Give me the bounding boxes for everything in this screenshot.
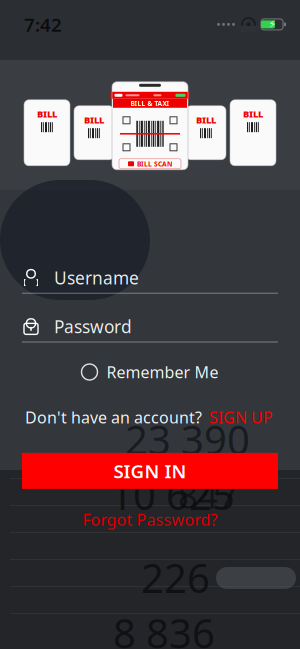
staticText: 10 <box>110 468 156 521</box>
staticText: BILL <box>196 114 216 126</box>
staticText: 390 <box>181 413 250 466</box>
staticText: BILL <box>84 114 104 126</box>
staticText: SIGN UP <box>209 407 273 428</box>
staticText: 7:42 <box>24 12 62 37</box>
button[interactable]: SIGN IN <box>22 453 278 489</box>
staticText: BILL <box>243 108 263 120</box>
staticText: BILL <box>37 108 57 120</box>
staticText: Remember Me <box>106 361 218 383</box>
staticText: SIGN IN <box>113 458 186 483</box>
staticText: Username <box>54 266 139 289</box>
staticText: 836 <box>146 606 215 649</box>
staticText: BILL SCAN <box>137 159 172 168</box>
button[interactable]: Forgot Password? <box>76 505 223 534</box>
staticText: Password <box>54 315 132 338</box>
staticText: 226 <box>141 551 210 604</box>
staticText: 8 <box>113 606 136 649</box>
staticText: 625 <box>166 468 235 521</box>
button[interactable]: SIGN UP <box>207 404 275 431</box>
staticText: Forgot Password? <box>82 509 217 530</box>
staticText: BILL & TAXI <box>130 99 169 108</box>
staticText: 23 <box>125 413 171 466</box>
staticText: 847 <box>178 472 238 518</box>
staticText: Don't have an account? <box>25 407 202 428</box>
staticText: ⚡︎ <box>268 18 275 30</box>
button[interactable]: Remember Me <box>75 356 224 388</box>
